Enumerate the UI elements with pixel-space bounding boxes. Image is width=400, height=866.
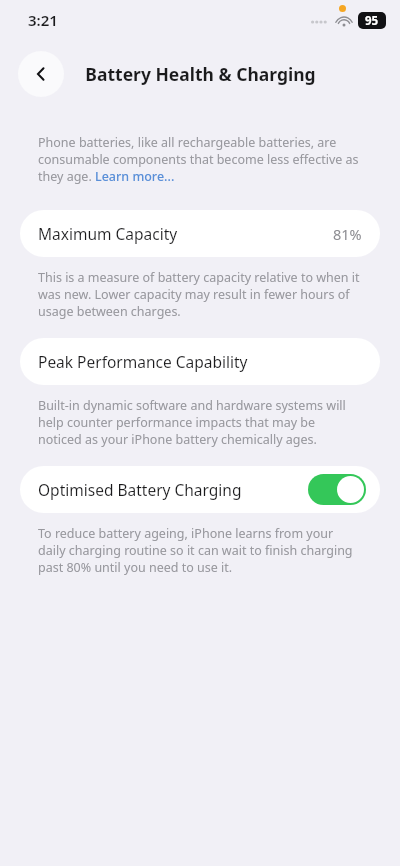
staticText: Battery Health & Charging <box>85 62 316 86</box>
button[interactable]: Optimised Battery Charging toggle <box>308 474 366 505</box>
staticText: Peak Performance Capability <box>38 351 248 372</box>
staticText: This is a measure of battery capacity re… <box>38 269 362 320</box>
staticText: To reduce battery ageing, iPhone learns … <box>38 525 362 576</box>
staticText: Maximum Capacity <box>38 223 178 244</box>
button[interactable]: Peak Performance Capability <box>20 338 380 385</box>
button[interactable]: Optimised Battery Charging <box>20 466 380 513</box>
staticText: Optimised Battery Charging <box>38 479 242 500</box>
staticText: 3:21 <box>28 10 58 30</box>
button[interactable]: Maximum Capacity <box>20 210 380 257</box>
staticText: 81% <box>333 224 362 244</box>
staticText: 95 <box>365 13 379 29</box>
staticText: Built-in dynamic software and hardware s… <box>38 397 362 448</box>
staticText: Phone batteries, like all rechargeable b… <box>38 134 362 185</box>
button[interactable]: Back <box>18 51 64 97</box>
